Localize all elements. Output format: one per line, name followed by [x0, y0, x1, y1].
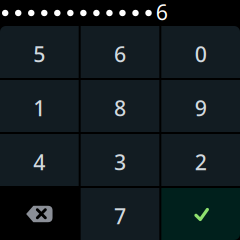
button[interactable]: 8: [81, 80, 159, 132]
staticText: 8: [114, 94, 126, 122]
button[interactable]: 7: [81, 188, 159, 240]
staticText: 9: [195, 94, 207, 122]
staticText: 2: [195, 148, 207, 176]
button[interactable]: 2: [161, 134, 240, 186]
button[interactable]: 9: [161, 80, 240, 132]
button[interactable]: 4: [0, 134, 79, 186]
staticText: 4: [33, 148, 45, 176]
button[interactable]: Confirm: [161, 188, 240, 240]
staticText: 0: [195, 40, 207, 68]
button[interactable]: 0: [161, 26, 240, 78]
button[interactable]: 3: [81, 134, 159, 186]
staticText: 1: [33, 94, 45, 122]
button[interactable]: 6: [81, 26, 159, 78]
button[interactable]: 1: [0, 80, 79, 132]
button[interactable]: 5: [0, 26, 79, 78]
staticText: 5: [33, 40, 45, 68]
staticText: 7: [114, 202, 126, 230]
button[interactable]: Delete: [0, 188, 79, 240]
staticText: 6: [114, 40, 126, 68]
staticText: 6: [156, 0, 168, 26]
staticText: 3: [114, 148, 126, 176]
